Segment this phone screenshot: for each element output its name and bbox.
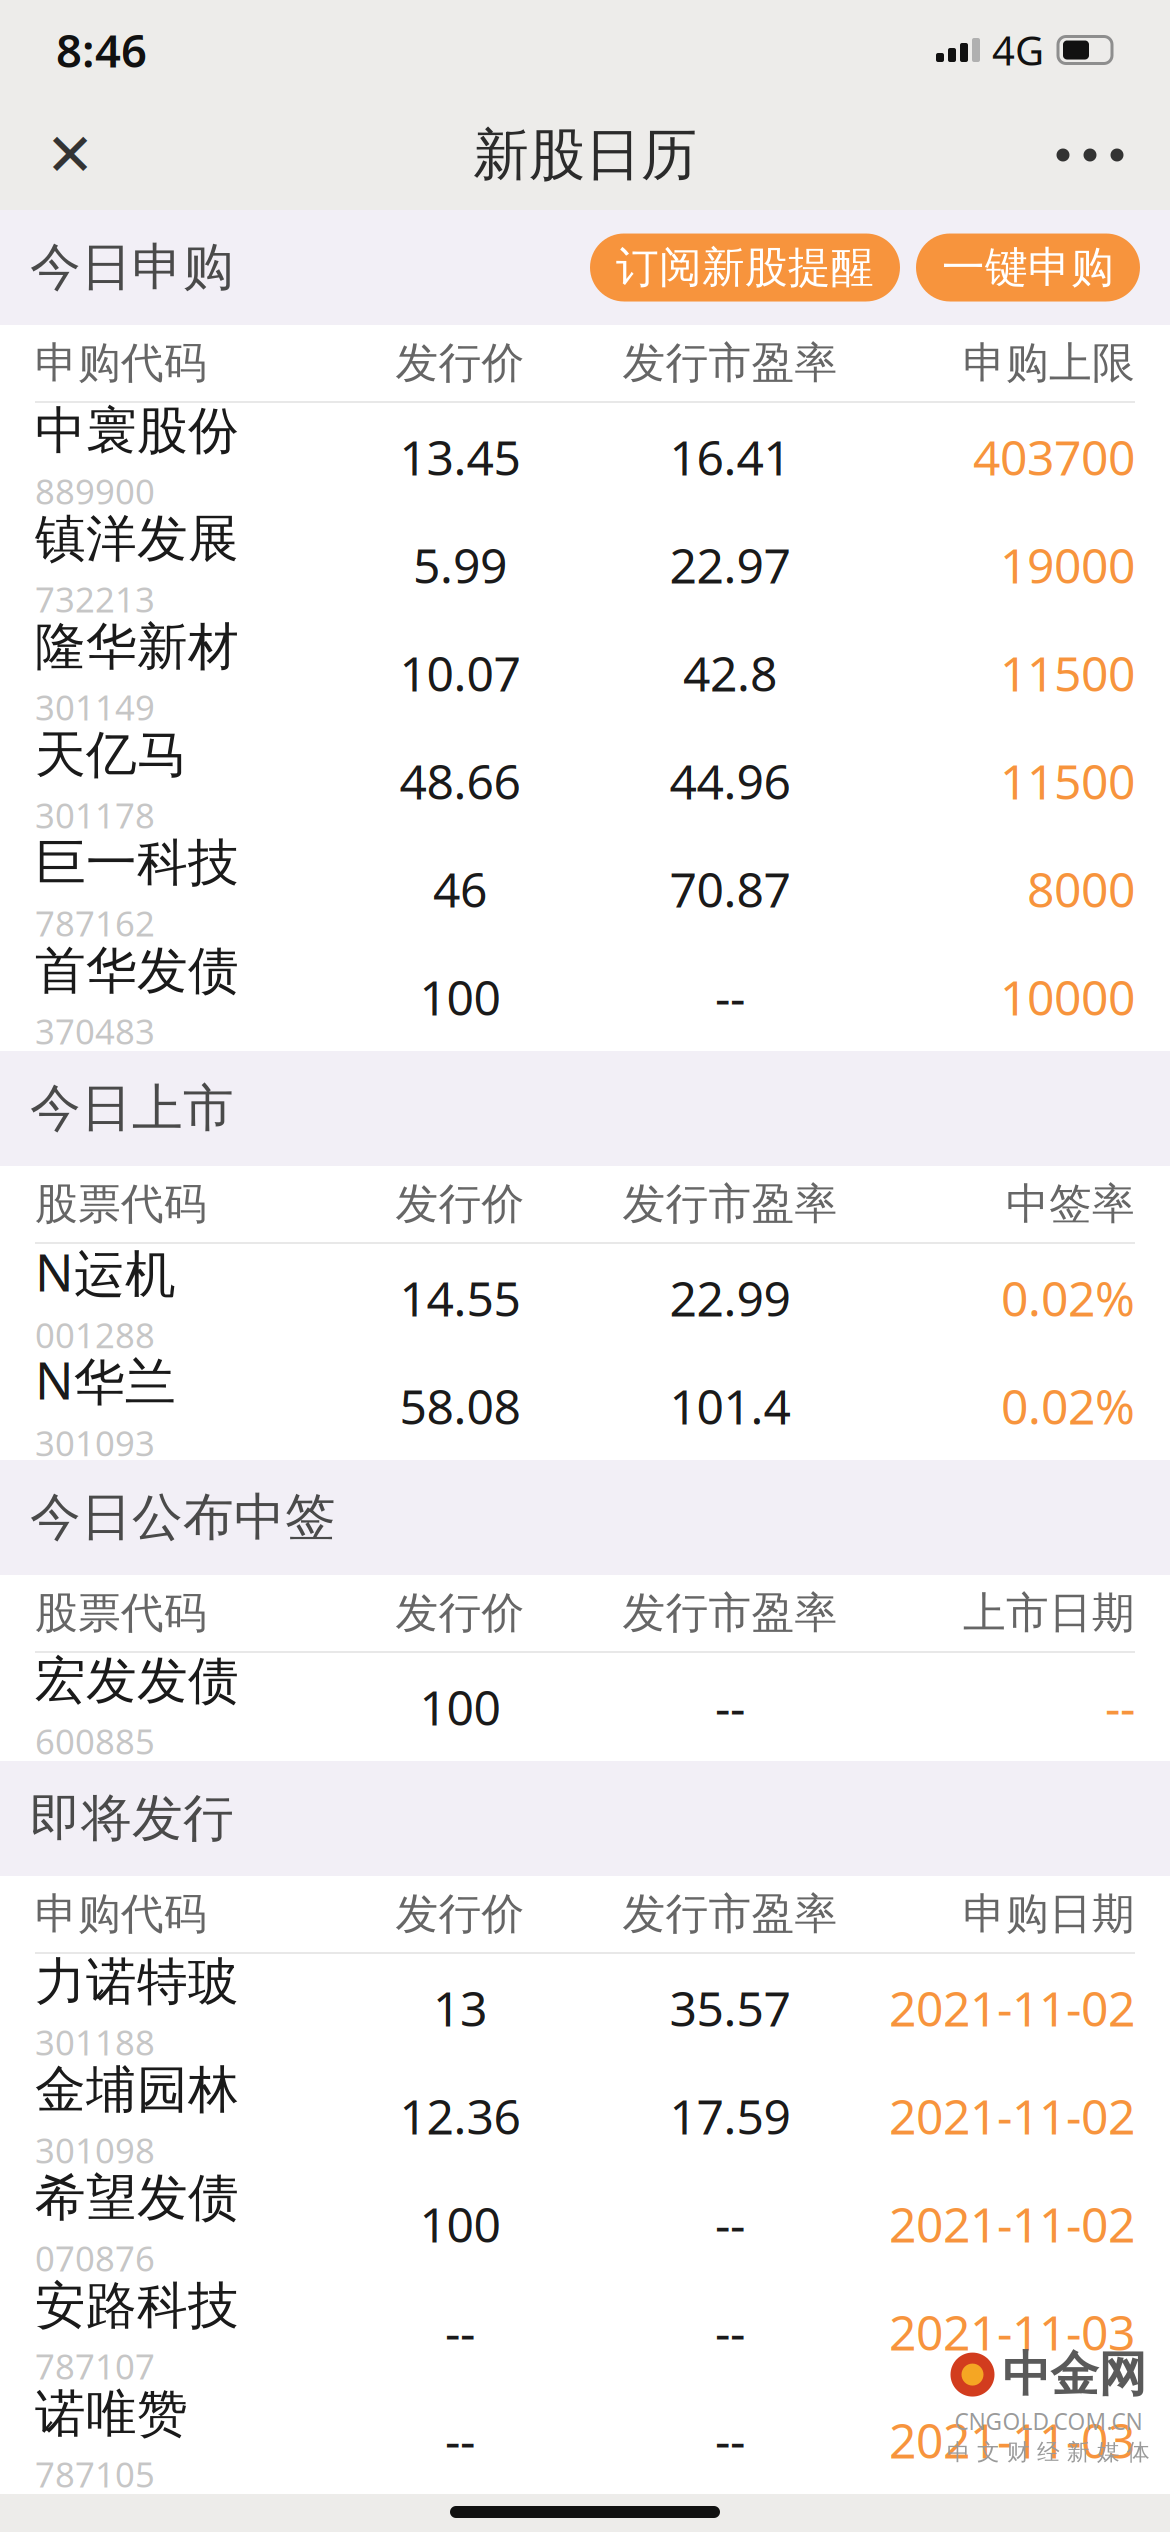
button[interactable]: 一键申购: [916, 233, 1140, 301]
staticText: 中金网: [1002, 2345, 1146, 2404]
button[interactable]: 巨一科技: [0, 835, 1170, 943]
staticText: --: [715, 965, 745, 1029]
staticText: --: [715, 2300, 745, 2364]
staticText: 天亿马: [35, 724, 188, 786]
staticText: 001288: [35, 1312, 155, 1358]
staticText: 101.4: [669, 1374, 790, 1438]
button[interactable]: More options: [1030, 105, 1150, 205]
staticText: 申购上限: [963, 337, 1135, 389]
staticText: 即将发行: [30, 1787, 234, 1850]
staticText: 301093: [35, 1420, 155, 1466]
staticText: 镇洋发展: [35, 508, 239, 570]
staticText: 力诺特玻: [35, 1951, 239, 2013]
button[interactable]: 诺唯赞: [0, 2386, 1170, 2494]
staticText: 新股日历: [473, 121, 697, 189]
button[interactable]: Close: [20, 105, 120, 205]
staticText: 4G: [992, 23, 1044, 76]
staticText: 申购日期: [963, 1888, 1135, 1940]
staticText: 发行市盈率: [622, 1888, 837, 1940]
staticText: 2021-11-02: [889, 2192, 1135, 2256]
staticText: 发行市盈率: [622, 337, 837, 389]
button[interactable]: 订阅新股提醒: [590, 233, 900, 301]
staticText: 发行价: [395, 1888, 524, 1940]
staticText: 发行价: [395, 337, 524, 389]
staticText: 19000: [1000, 533, 1135, 597]
staticText: 100: [419, 965, 500, 1029]
staticText: 今日上市: [30, 1077, 234, 1140]
staticText: 上市日期: [963, 1587, 1135, 1639]
staticText: 股票代码: [35, 1587, 207, 1639]
staticText: N华兰: [35, 1346, 176, 1414]
staticText: 48.66: [399, 749, 520, 813]
button[interactable]: N运机: [0, 1244, 1170, 1352]
staticText: 今日申购: [30, 236, 234, 299]
staticText: 13.45: [399, 425, 520, 489]
staticText: 安路科技: [35, 2275, 239, 2337]
staticText: 2021-11-02: [889, 2084, 1135, 2148]
staticText: 889900: [35, 468, 155, 514]
staticText: 100: [419, 1675, 500, 1739]
staticText: --: [715, 1675, 745, 1739]
button[interactable]: 希望发债: [0, 2170, 1170, 2278]
staticText: 中签率: [1006, 1178, 1135, 1230]
staticText: 一键申购: [942, 241, 1114, 294]
staticText: N运机: [35, 1238, 176, 1306]
staticText: 22.97: [669, 533, 790, 597]
staticText: 13: [433, 1976, 487, 2040]
staticText: 44.96: [669, 749, 790, 813]
staticText: 申购代码: [35, 337, 207, 389]
button[interactable]: 首华发债: [0, 943, 1170, 1051]
staticText: 8:46: [56, 20, 147, 80]
staticText: 申购代码: [35, 1888, 207, 1940]
staticText: --: [715, 2192, 745, 2256]
staticText: 600885: [35, 1718, 155, 1764]
button[interactable]: 金埔园林: [0, 2062, 1170, 2170]
staticText: 巨一科技: [35, 832, 239, 894]
button[interactable]: 中寰股份: [0, 403, 1170, 511]
staticText: 2021-11-02: [889, 1976, 1135, 2040]
staticText: 股票代码: [35, 1178, 207, 1230]
button[interactable]: 隆华新材: [0, 619, 1170, 727]
button[interactable]: 宏发发债: [0, 1653, 1170, 1761]
staticText: 2021-11-03: [889, 2408, 1135, 2472]
staticText: 8000: [1027, 857, 1135, 921]
staticText: 787105: [35, 2451, 155, 2497]
staticText: ✕: [45, 122, 94, 188]
staticText: 42.8: [683, 641, 777, 705]
staticText: 301149: [35, 684, 155, 730]
staticText: 787107: [35, 2343, 155, 2389]
staticText: --: [445, 2408, 475, 2472]
button[interactable]: 力诺特玻: [0, 1954, 1170, 2062]
staticText: CNGOLD.COM.CN: [954, 2406, 1142, 2436]
button[interactable]: 镇洋发展: [0, 511, 1170, 619]
staticText: 787162: [35, 900, 155, 946]
staticText: 732213: [35, 576, 155, 622]
staticText: 11500: [1000, 641, 1135, 705]
staticText: 12.36: [399, 2084, 520, 2148]
staticText: 100: [419, 2192, 500, 2256]
staticText: 22.99: [669, 1266, 790, 1330]
button[interactable]: 天亿马: [0, 727, 1170, 835]
staticText: 发行市盈率: [622, 1178, 837, 1230]
staticText: 14.55: [399, 1266, 520, 1330]
staticText: 诺唯赞: [35, 2383, 188, 2445]
staticText: 今日公布中签: [30, 1486, 336, 1549]
staticText: 首华发债: [35, 940, 239, 1002]
staticText: --: [715, 2408, 745, 2472]
staticText: 17.59: [669, 2084, 790, 2148]
staticText: 070876: [35, 2235, 155, 2281]
staticText: 70.87: [669, 857, 790, 921]
staticText: 370483: [35, 1008, 155, 1054]
staticText: 订阅新股提醒: [616, 241, 874, 294]
button[interactable]: 安路科技: [0, 2278, 1170, 2386]
staticText: 0.02%: [1001, 1266, 1135, 1330]
staticText: 46: [433, 857, 487, 921]
staticText: --: [445, 2300, 475, 2364]
staticText: 301098: [35, 2127, 155, 2173]
staticText: 301188: [35, 2019, 155, 2065]
staticText: 58.08: [399, 1374, 520, 1438]
button[interactable]: N华兰: [0, 1352, 1170, 1460]
staticText: 隆华新材: [35, 616, 239, 678]
staticText: --: [1105, 1675, 1135, 1739]
staticText: 10000: [1000, 965, 1135, 1029]
